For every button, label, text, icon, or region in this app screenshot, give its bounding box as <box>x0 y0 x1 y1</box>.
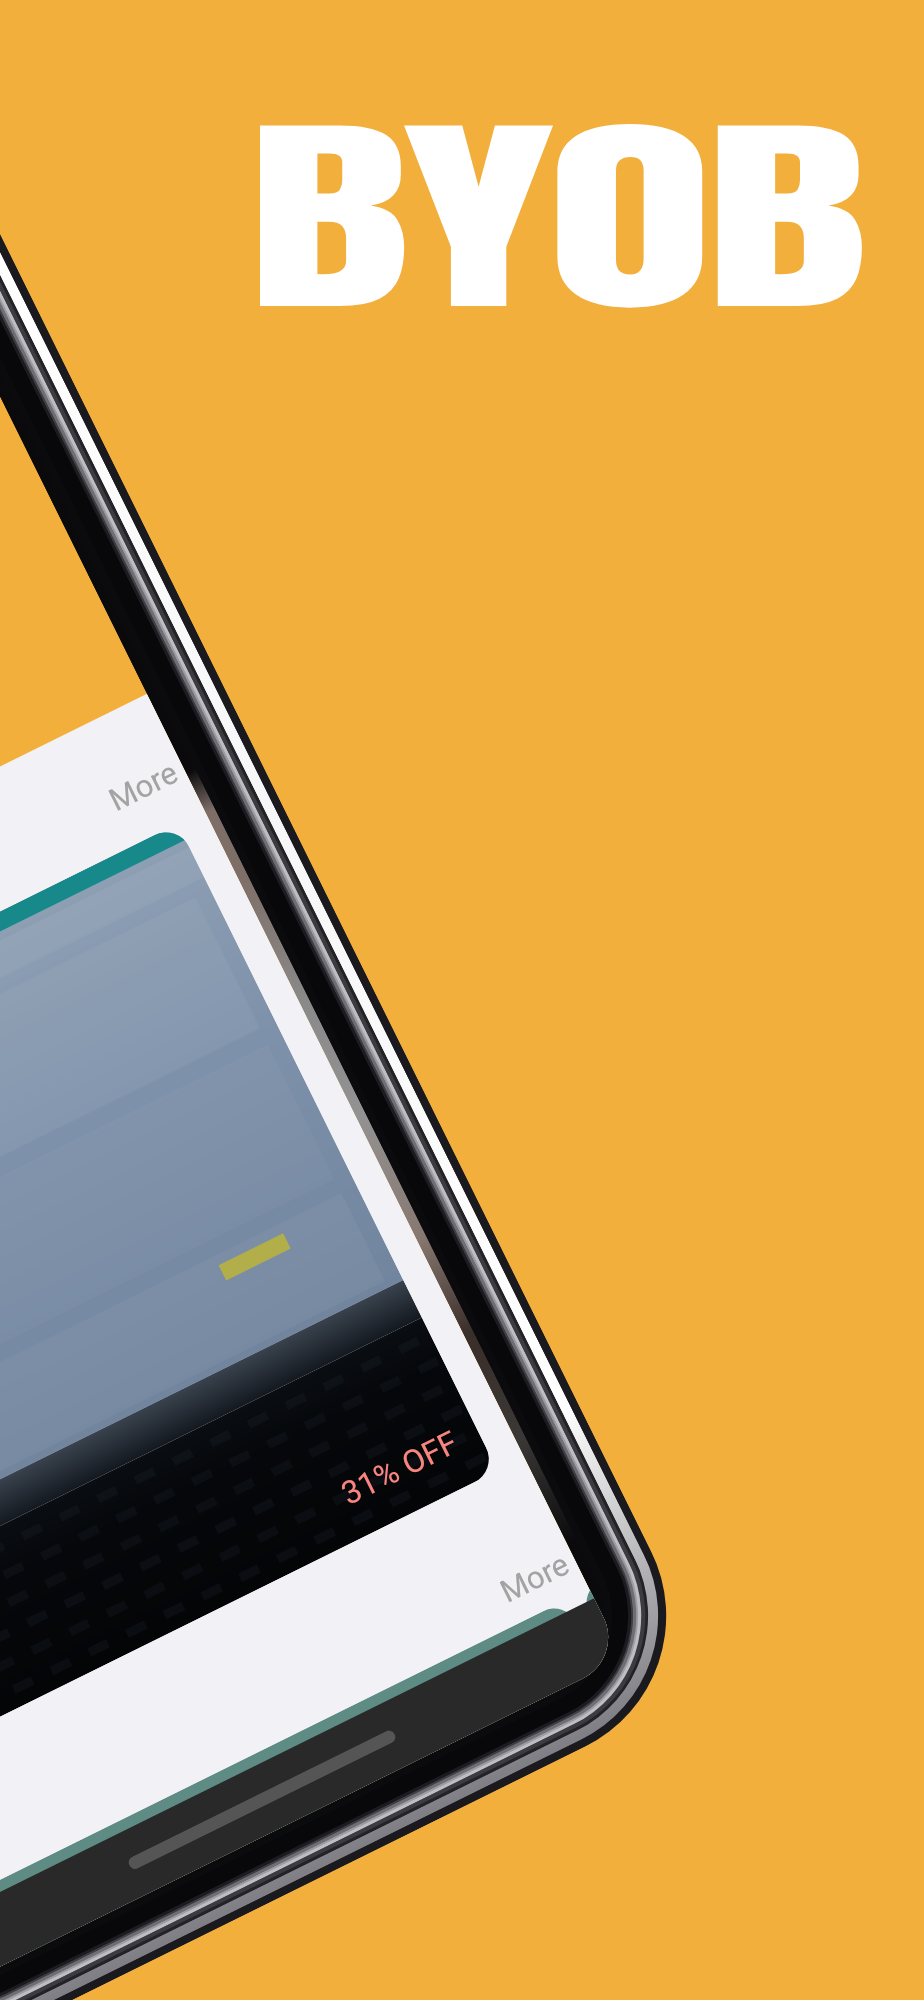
button[interactable]: More <box>103 754 184 818</box>
staticText: 31% OFF <box>335 1423 464 1513</box>
staticText: BYOB <box>247 59 860 375</box>
button[interactable]: More <box>494 1545 575 1610</box>
staticText: More <box>103 754 184 818</box>
button[interactable] <box>0 1600 599 1988</box>
button[interactable] <box>578 1587 624 1663</box>
button[interactable]: 31% OFF <box>0 824 498 1788</box>
staticText: More <box>494 1545 575 1610</box>
